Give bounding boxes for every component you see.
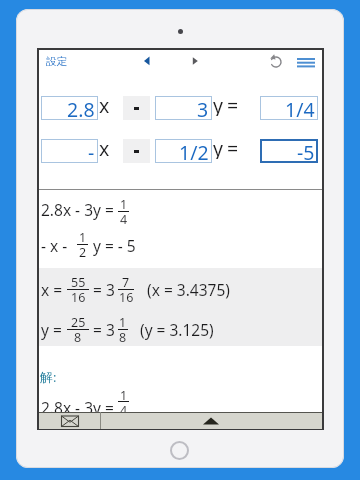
- staticText: y: [213, 135, 223, 159]
- staticText: 設定: [46, 55, 67, 68]
- staticText: 2.8x - 3y =: [41, 397, 114, 418]
- button[interactable]: [39, 413, 100, 429]
- staticText: 1/4: [285, 96, 315, 120]
- staticText: y: [213, 92, 223, 116]
- button[interactable]: -: [41, 139, 98, 163]
- button[interactable]: 2.8: [41, 96, 98, 120]
- button[interactable]: 3: [155, 96, 212, 120]
- button[interactable]: [140, 53, 154, 69]
- button[interactable]: [170, 441, 189, 460]
- staticText: x: [99, 92, 110, 116]
- button[interactable]: [268, 53, 284, 69]
- button[interactable]: [189, 53, 203, 69]
- staticText: 解:: [40, 368, 57, 386]
- staticText: 8: [119, 329, 127, 345]
- staticText: =: [227, 92, 239, 116]
- staticText: 1: [120, 196, 128, 212]
- staticText: - x -: [41, 235, 68, 256]
- button[interactable]: [297, 55, 315, 69]
- staticText: = 3: [93, 319, 115, 340]
- staticText: 1: [120, 387, 128, 403]
- button[interactable]: -5: [260, 139, 318, 163]
- staticText: -5: [297, 139, 315, 163]
- staticText: 7: [122, 274, 130, 290]
- staticText: x: [99, 135, 110, 159]
- staticText: 2.8: [67, 96, 95, 120]
- staticText: x =: [41, 279, 63, 300]
- staticText: -: [88, 139, 95, 163]
- staticText: y =: [41, 319, 62, 340]
- staticText: 16: [71, 289, 86, 305]
- staticText: 1: [79, 229, 87, 245]
- staticText: y = - 5: [93, 235, 136, 256]
- button[interactable]: 設定: [40, 53, 72, 69]
- button[interactable]: [123, 96, 150, 120]
- staticText: (x = 3.4375): [147, 279, 230, 300]
- staticText: = 3: [93, 279, 115, 300]
- staticText: (y = 3.125): [140, 319, 214, 340]
- staticText: 4: [120, 211, 128, 227]
- staticText: 1/2: [179, 139, 209, 163]
- staticText: 2: [79, 244, 87, 260]
- staticText: 2.8x - 3y =: [41, 199, 114, 220]
- staticText: 1: [119, 314, 127, 330]
- staticText: 3: [197, 96, 209, 120]
- button[interactable]: 1/4: [260, 96, 318, 120]
- staticText: =: [227, 135, 239, 159]
- staticText: 8: [74, 329, 82, 345]
- staticText: 4: [120, 402, 128, 418]
- staticText: 16: [119, 289, 134, 305]
- button[interactable]: 1/2: [155, 139, 212, 163]
- staticText: 55: [71, 274, 86, 290]
- button[interactable]: [123, 139, 150, 163]
- button[interactable]: [101, 413, 322, 429]
- staticText: 25: [71, 314, 86, 330]
